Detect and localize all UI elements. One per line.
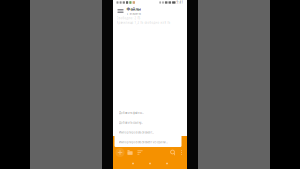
- staticText: Импортировать элемент из ссылки…: [119, 140, 168, 144]
- button[interactable]: More options: [178, 147, 185, 157]
- staticText: Хранилище: 1,2 ГБ свободно из 8 ГБ: [116, 21, 170, 24]
- button[interactable]: Импортировать элемент из ссылки…: [114, 137, 181, 147]
- button[interactable]: Добавить файлы…: [114, 108, 181, 118]
- staticText: Файлы: [126, 6, 140, 12]
- staticText: Свободно: 2 ГБ: [116, 16, 140, 20]
- button[interactable]: Add: [115, 147, 125, 157]
- button[interactable]: Navigation menu: [114, 6, 126, 16]
- button[interactable]: Search: [168, 147, 178, 157]
- staticText: Добавить ссылку…: [119, 121, 143, 124]
- button[interactable]: Импортировать элемент…: [114, 127, 181, 137]
- button[interactable]: Home: [141, 159, 158, 167]
- button[interactable]: Recents: [158, 159, 175, 167]
- staticText: Импортировать элемент…: [119, 131, 154, 134]
- button[interactable]: Back: [124, 159, 141, 167]
- button[interactable]: Sort: [135, 147, 145, 157]
- button[interactable]: New folder: [125, 147, 135, 157]
- staticText: 9:41: [176, 1, 183, 4]
- staticText: Добавить файлы…: [119, 111, 144, 115]
- staticText: 4 элемента: [126, 12, 140, 16]
- button[interactable]: Добавить ссылку…: [114, 118, 181, 128]
